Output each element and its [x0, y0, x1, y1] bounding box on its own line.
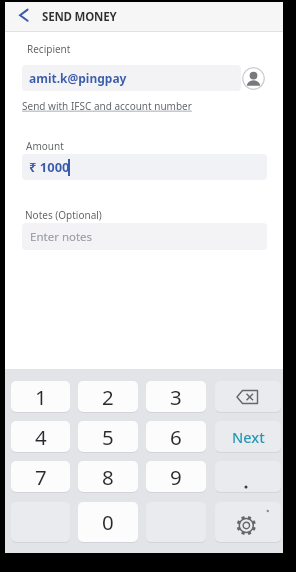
button[interactable]: 5 [78, 421, 138, 452]
button[interactable] [10, 4, 36, 30]
staticText: 4 [35, 423, 47, 451]
button[interactable]: 6 [146, 421, 206, 452]
button[interactable]: Send with IFSC and account number [22, 98, 202, 113]
staticText: 6 [170, 423, 182, 451]
button[interactable]: Enter notes [22, 223, 267, 250]
staticText: 1 [35, 383, 47, 411]
button[interactable] [215, 381, 281, 412]
button[interactable]: ₹ 1000 [22, 154, 267, 180]
staticText: Next [232, 427, 265, 447]
staticText: Notes (Optional) [25, 208, 102, 222]
staticText: Send with IFSC and account number [22, 99, 192, 113]
staticText: amit.k@pingpay [29, 70, 127, 86]
staticText: 5 [102, 423, 114, 451]
button[interactable]: 1 [11, 381, 70, 412]
staticText: Recipient [27, 42, 71, 56]
staticText: 0 [102, 508, 114, 536]
button[interactable]: 3 [146, 381, 206, 412]
button[interactable]: 7 [11, 461, 70, 492]
staticText: 3 [170, 383, 182, 411]
staticText: 2 [102, 383, 114, 411]
button[interactable] [215, 502, 281, 542]
button[interactable]: 0 [78, 502, 138, 542]
button[interactable]: amit.k@pingpay [22, 65, 241, 91]
staticText: 8 [102, 463, 114, 491]
button[interactable]: Next [215, 421, 281, 452]
staticText: Enter notes [30, 229, 93, 245]
staticText: 7 [35, 463, 47, 491]
button[interactable]: 2 [78, 381, 138, 412]
button[interactable]: 4 [11, 421, 70, 452]
button[interactable]: 8 [78, 461, 138, 492]
button[interactable] [242, 67, 265, 90]
button[interactable] [215, 461, 281, 492]
staticText: SEND MONEY [42, 9, 117, 25]
staticText: ₹ 1000 [29, 158, 70, 176]
button[interactable]: 9 [146, 461, 206, 492]
staticText: Amount [26, 139, 64, 153]
staticText: 9 [170, 463, 182, 491]
